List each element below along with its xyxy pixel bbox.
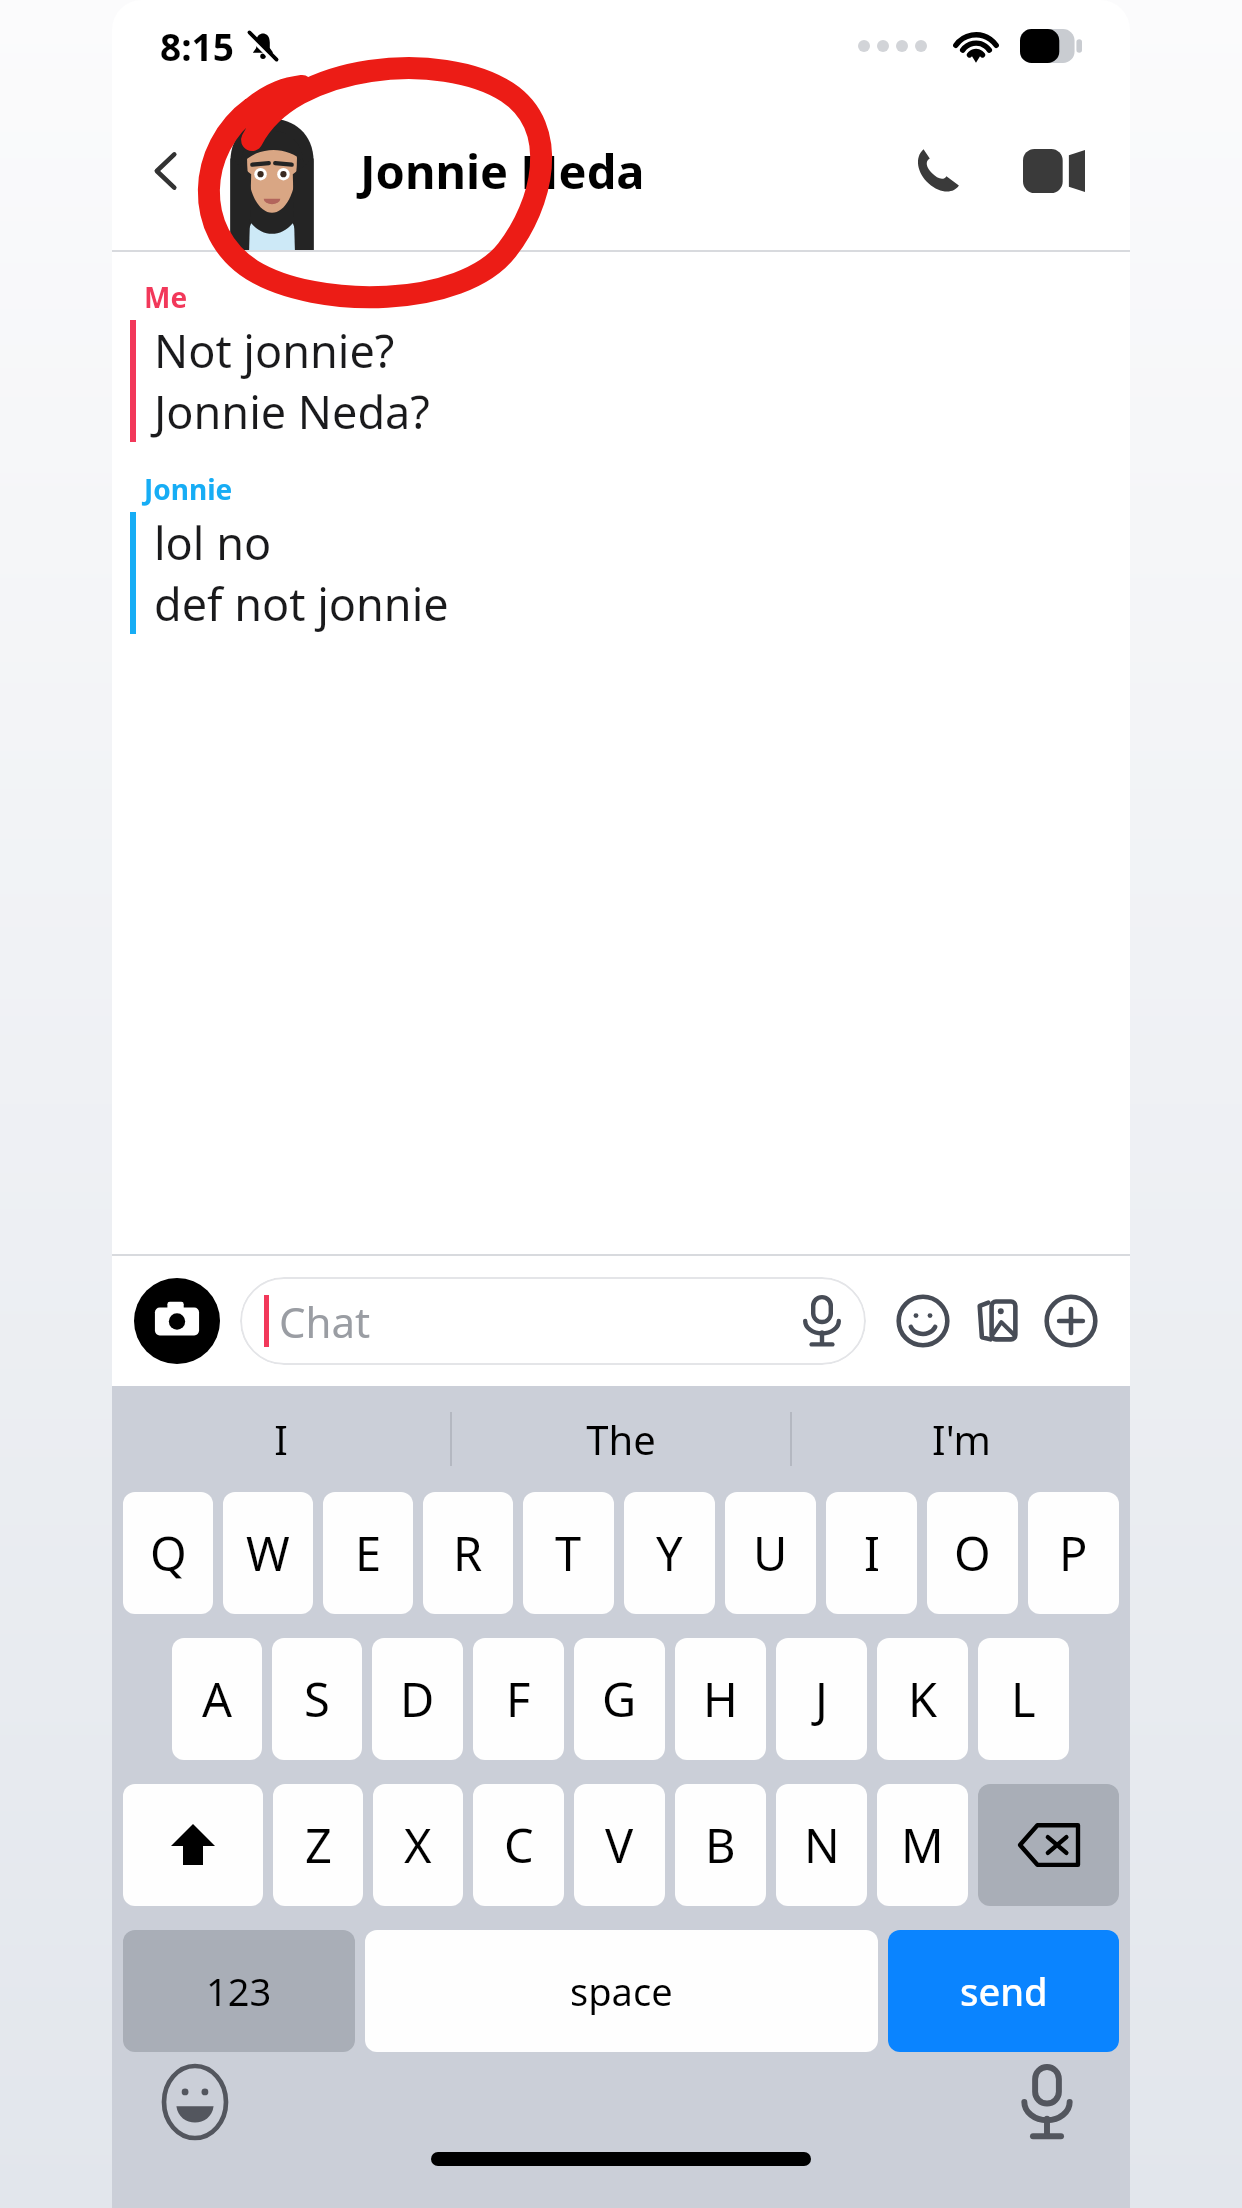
button[interactable]: Dictation — [998, 2053, 1096, 2151]
staticText: V — [605, 1813, 634, 1877]
staticText: def not jonnie — [154, 573, 449, 634]
staticText: F — [506, 1667, 531, 1731]
button[interactable]: M — [877, 1784, 968, 1906]
staticText: Jonnie Neda? — [154, 381, 430, 442]
button[interactable]: Shift — [123, 1784, 263, 1906]
button[interactable]: send — [888, 1930, 1119, 2052]
button[interactable]: U — [725, 1492, 816, 1614]
button[interactable]: Jonnie — [130, 470, 1130, 634]
button[interactable]: X — [373, 1784, 463, 1906]
button[interactable]: Jonnie Neda — [360, 139, 882, 203]
button[interactable]: K — [877, 1638, 968, 1760]
staticText: B — [705, 1813, 736, 1877]
staticText: N — [804, 1813, 840, 1877]
button[interactable]: Emoji — [886, 1284, 960, 1358]
button[interactable]: Backspace — [978, 1784, 1119, 1906]
staticText: R — [453, 1521, 483, 1585]
button[interactable]: A — [172, 1638, 262, 1760]
button[interactable]: More options — [1034, 1284, 1108, 1358]
staticText: lol no — [154, 512, 272, 573]
staticText: The — [586, 1412, 656, 1466]
button[interactable]: W — [223, 1492, 313, 1614]
staticText: K — [908, 1667, 938, 1731]
button[interactable]: Z — [273, 1784, 363, 1906]
staticText: G — [602, 1667, 637, 1731]
button[interactable]: Stickers — [960, 1284, 1034, 1358]
staticText: Q — [150, 1521, 187, 1585]
staticText: O — [954, 1521, 991, 1585]
button[interactable]: Y — [624, 1492, 715, 1614]
staticText: Z — [305, 1813, 332, 1877]
staticText: A — [202, 1667, 233, 1731]
staticText: S — [304, 1667, 330, 1731]
staticText: I — [864, 1521, 880, 1585]
staticText: E — [355, 1521, 382, 1585]
button[interactable]: 123 — [123, 1930, 355, 2052]
button[interactable]: I'm — [792, 1386, 1130, 1492]
staticText: I — [274, 1412, 288, 1466]
button[interactable]: E — [323, 1492, 413, 1614]
button[interactable]: C — [473, 1784, 564, 1906]
staticText: L — [1011, 1667, 1036, 1731]
staticText: Not jonnie? — [154, 320, 395, 381]
button[interactable]: I — [826, 1492, 917, 1614]
button[interactable]: Call — [882, 117, 990, 225]
staticText: I'm — [932, 1412, 991, 1466]
staticText: T — [555, 1521, 582, 1585]
button[interactable]: F — [473, 1638, 564, 1760]
button[interactable]: I — [112, 1386, 450, 1492]
button[interactable]: Profile — [220, 92, 324, 250]
button[interactable]: Chat — [240, 1277, 866, 1365]
button[interactable]: H — [675, 1638, 766, 1760]
button[interactable]: P — [1028, 1492, 1119, 1614]
staticText: X — [404, 1813, 432, 1877]
staticText: send — [960, 1965, 1048, 2017]
staticText: 8:15 — [160, 21, 234, 71]
button[interactable]: Emoji keyboard — [146, 2053, 244, 2151]
staticText: M — [901, 1813, 944, 1877]
staticText: space — [570, 1965, 673, 2017]
staticText: 123 — [206, 1965, 272, 2017]
button[interactable]: O — [927, 1492, 1018, 1614]
button[interactable]: J — [776, 1638, 867, 1760]
button[interactable]: Me — [130, 278, 1130, 442]
button[interactable]: L — [978, 1638, 1069, 1760]
staticText: Chat — [279, 1293, 371, 1350]
staticText: U — [753, 1521, 788, 1585]
button[interactable]: B — [675, 1784, 766, 1906]
button[interactable]: Q — [123, 1492, 213, 1614]
staticText: J — [815, 1667, 828, 1731]
staticText: D — [400, 1667, 435, 1731]
staticText: C — [504, 1813, 534, 1877]
staticText: Me — [144, 278, 188, 316]
button[interactable]: The — [452, 1386, 790, 1492]
button[interactable]: D — [372, 1638, 463, 1760]
button[interactable]: N — [776, 1784, 867, 1906]
button[interactable]: V — [574, 1784, 665, 1906]
button[interactable]: S — [272, 1638, 362, 1760]
staticText: H — [703, 1667, 738, 1731]
button[interactable]: R — [423, 1492, 513, 1614]
button[interactable]: T — [523, 1492, 614, 1614]
staticText: P — [1059, 1521, 1088, 1585]
button[interactable]: Camera — [134, 1278, 220, 1364]
button[interactable]: space — [365, 1930, 878, 2052]
staticText: Jonnie — [144, 470, 233, 508]
button[interactable]: Back — [112, 117, 220, 225]
button[interactable]: G — [574, 1638, 665, 1760]
staticText: Y — [656, 1521, 683, 1585]
staticText: W — [246, 1521, 290, 1585]
button[interactable]: Video call — [1000, 117, 1108, 225]
